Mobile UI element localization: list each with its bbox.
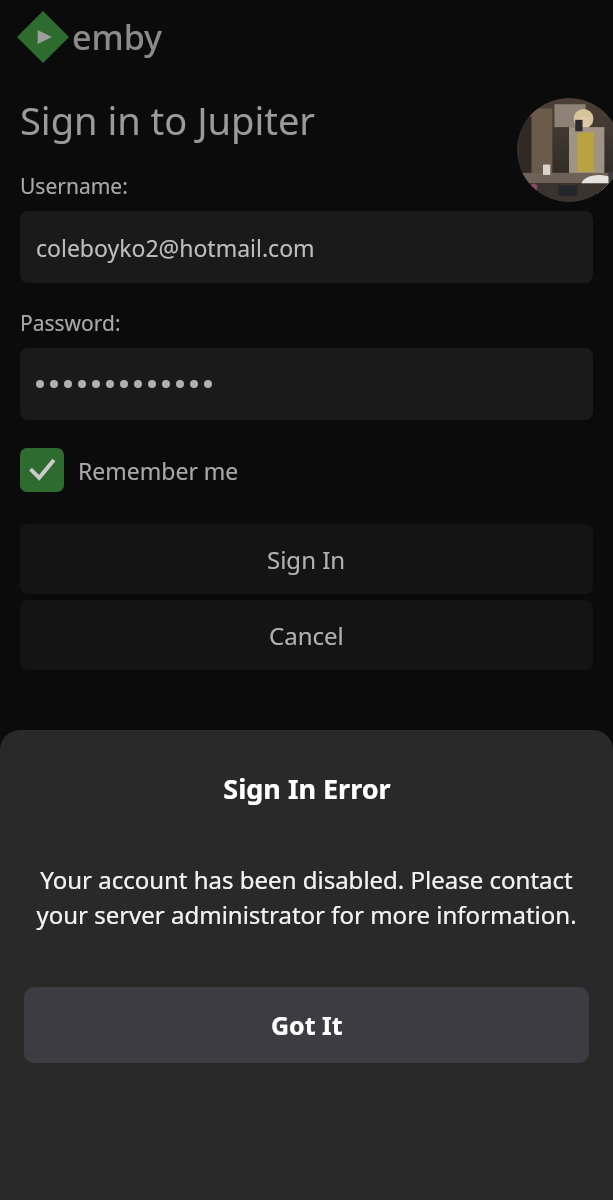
button[interactable]: Cancel xyxy=(20,600,593,670)
button[interactable]: coleboyko2@hotmail.com xyxy=(20,211,593,283)
button[interactable]: Sign In xyxy=(20,524,593,594)
button[interactable]: Got It xyxy=(24,987,589,1063)
staticText: Sign In xyxy=(267,543,346,576)
staticText: Sign In Error xyxy=(223,770,391,807)
staticText: Username: xyxy=(20,172,128,201)
button[interactable]: Remember me xyxy=(20,448,239,492)
staticText: emby xyxy=(72,14,163,60)
button[interactable] xyxy=(20,348,593,420)
staticText: Your account has been disabled. Please c… xyxy=(26,863,587,931)
button[interactable]: User profile photo xyxy=(517,98,613,202)
staticText: coleboyko2@hotmail.com xyxy=(36,232,315,263)
staticText: Remember me xyxy=(78,455,239,486)
staticText: Password: xyxy=(20,309,121,338)
staticText: Got It xyxy=(271,1008,343,1042)
staticText: Sign in to Jupiter xyxy=(20,94,316,146)
staticText: Cancel xyxy=(269,619,344,652)
